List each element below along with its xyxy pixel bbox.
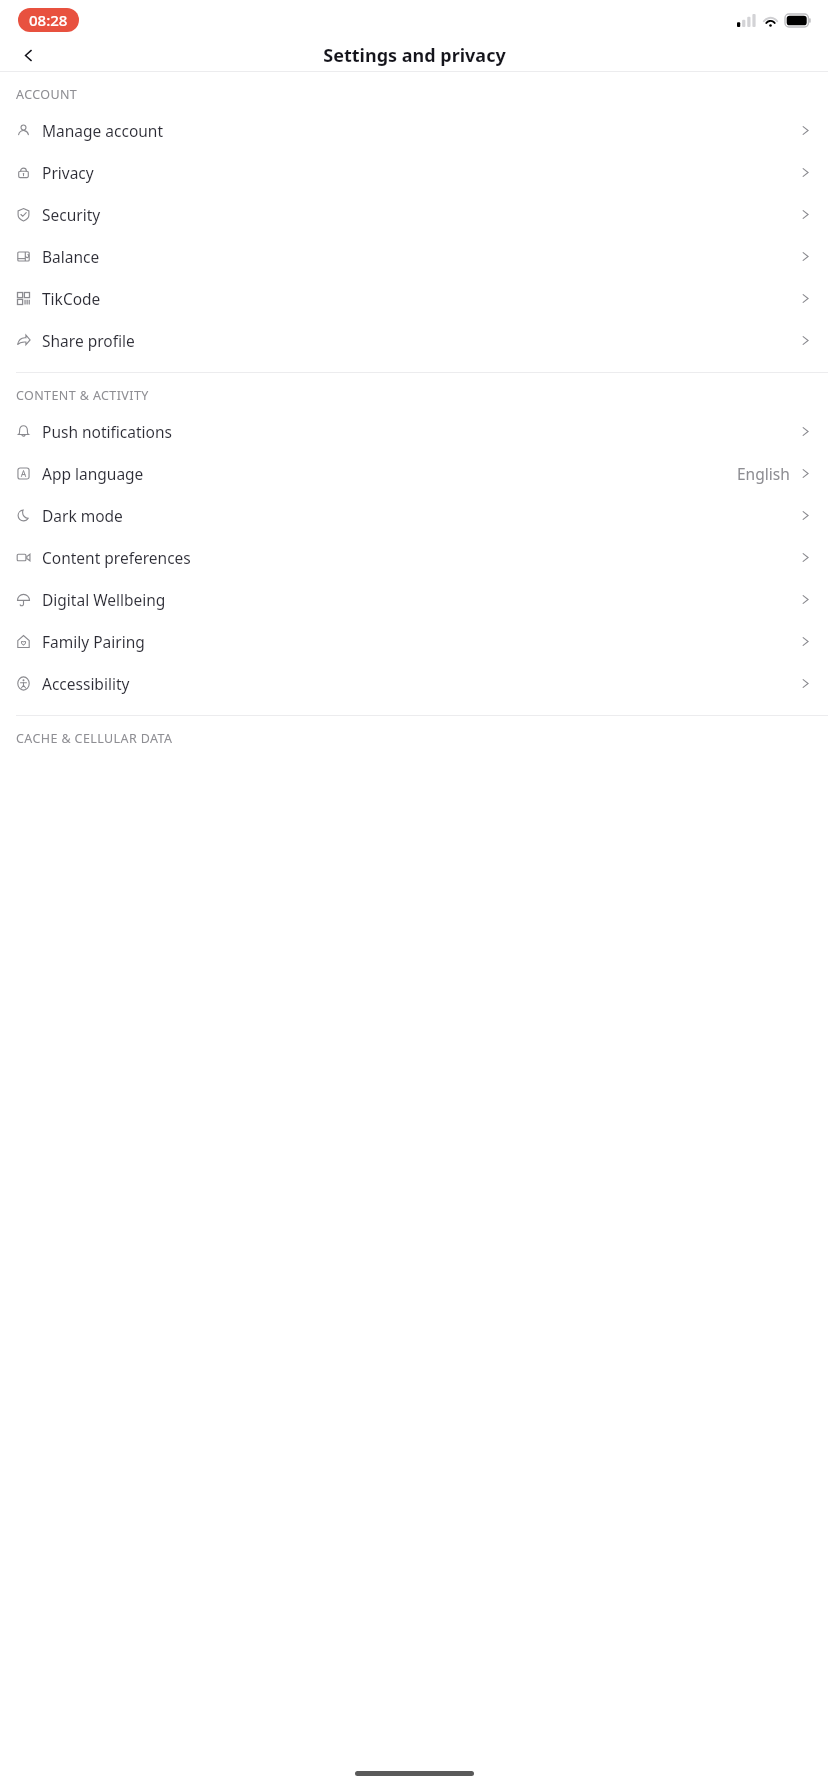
staticText: 08:28 — [29, 10, 68, 30]
staticText: ACCOUNT — [16, 86, 78, 103]
button[interactable]: Dark mode — [0, 494, 828, 536]
button[interactable]: Privacy — [0, 151, 828, 193]
button[interactable]: TikCode — [0, 277, 828, 319]
button[interactable]: Balance — [0, 235, 828, 277]
button[interactable]: Back — [8, 40, 48, 71]
staticText: CACHE & CELLULAR DATA — [16, 730, 173, 747]
staticText: Security — [42, 204, 101, 225]
button[interactable]: Manage account — [0, 109, 828, 151]
button[interactable]: Security — [0, 193, 828, 235]
staticText: Digital Wellbeing — [42, 589, 166, 610]
staticText: CONTENT & ACTIVITY — [16, 387, 149, 404]
staticText: Share profile — [42, 330, 135, 351]
button[interactable]: Content preferences — [0, 536, 828, 578]
staticText: English — [737, 463, 790, 484]
staticText: TikCode — [42, 288, 101, 309]
staticText: App language — [42, 463, 144, 484]
staticText: Push notifications — [42, 421, 172, 442]
staticText: Settings and privacy — [323, 43, 506, 68]
staticText: Balance — [42, 246, 100, 267]
button[interactable]: App language — [0, 452, 828, 494]
button[interactable]: Accessibility — [0, 662, 828, 704]
staticText: Family Pairing — [42, 631, 145, 652]
button[interactable]: Digital Wellbeing — [0, 578, 828, 620]
staticText: Privacy — [42, 162, 94, 183]
button[interactable]: Family Pairing — [0, 620, 828, 662]
staticText: Dark mode — [42, 505, 123, 526]
staticText: Manage account — [42, 120, 164, 141]
staticText: Accessibility — [42, 673, 130, 694]
button[interactable]: Share profile — [0, 319, 828, 361]
staticText: Content preferences — [42, 547, 191, 568]
button[interactable]: Push notifications — [0, 410, 828, 452]
